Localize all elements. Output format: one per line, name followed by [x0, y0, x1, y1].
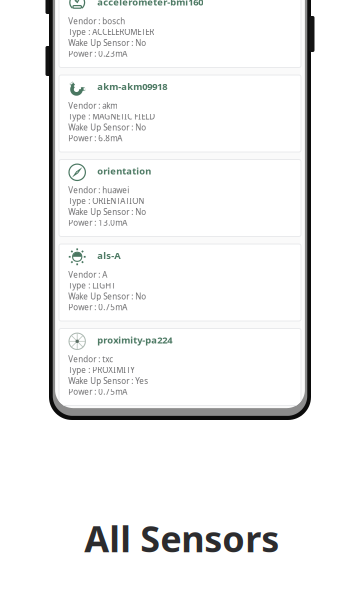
staticText: Wake Up Sensor : Yes	[68, 375, 148, 386]
staticText: All Sensors	[84, 514, 279, 562]
staticText: Type : MAGNETIC FIELD	[68, 111, 155, 122]
button[interactable]: akm-akm09918	[59, 75, 301, 152]
staticText: akm-akm09918	[97, 80, 167, 92]
staticText: Power : 6.8mA	[68, 133, 122, 143]
staticText: Power : 0.75mA	[68, 302, 127, 312]
staticText: Wake Up Sensor : No	[68, 122, 146, 133]
staticText: Type : ORIENTATION	[68, 196, 144, 206]
staticText: als-A	[97, 249, 120, 261]
button[interactable]: als-A	[59, 244, 301, 321]
staticText: accelerometer-bmi160	[97, 0, 203, 8]
staticText: proximity-pa224	[97, 334, 172, 346]
staticText: Vendor : A	[68, 269, 107, 280]
staticText: Vendor : akm	[68, 100, 117, 111]
button[interactable]: accelerometer-bmi160	[59, 0, 301, 67]
staticText: Vendor : huawei	[68, 185, 129, 195]
staticText: Wake Up Sensor : No	[68, 206, 146, 217]
staticText: Power : 0.75mA	[68, 386, 127, 397]
staticText: Power : 0.23mA	[68, 48, 127, 59]
staticText: Wake Up Sensor : No	[68, 291, 146, 302]
staticText: Vendor : bosch	[68, 16, 125, 26]
button[interactable]: proximity-pa224	[59, 328, 301, 405]
staticText: Type : ACCELEROMETER	[68, 27, 154, 37]
staticText: Vendor : txc	[68, 354, 113, 364]
staticText: Type : PROXIMITY	[68, 365, 135, 375]
staticText: orientation	[97, 165, 151, 177]
staticText: Wake Up Sensor : No	[68, 37, 146, 48]
staticText: Power : 13.0mA	[68, 217, 127, 228]
staticText: Type : LIGHT	[68, 280, 115, 291]
button[interactable]: orientation	[59, 159, 301, 236]
